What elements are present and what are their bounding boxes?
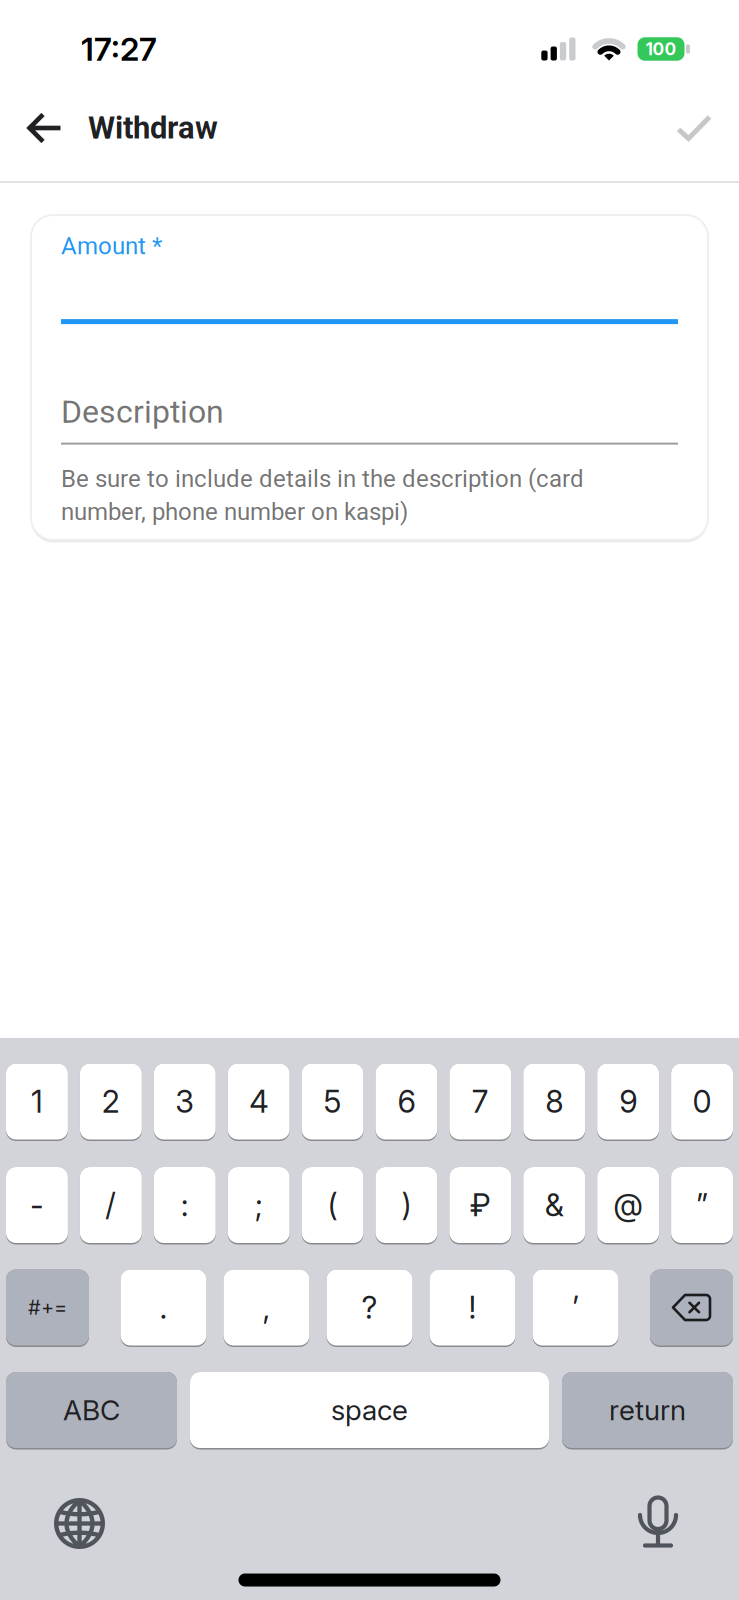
button[interactable]: 3: [154, 1063, 216, 1141]
staticText: return: [609, 1393, 686, 1426]
button[interactable]: Next keyboard: [53, 1497, 105, 1549]
button[interactable]: Amount *: [61, 232, 678, 324]
button[interactable]: :: [154, 1167, 216, 1244]
button[interactable]: 0: [671, 1063, 733, 1141]
staticText: 4: [249, 1083, 268, 1120]
button[interactable]: #+=: [6, 1269, 89, 1347]
button[interactable]: 6: [375, 1063, 437, 1141]
button[interactable]: &: [523, 1167, 585, 1244]
button[interactable]: return: [562, 1372, 733, 1449]
staticText: &: [545, 1187, 564, 1223]
staticText: @: [613, 1187, 643, 1223]
staticText: ): [401, 1187, 411, 1223]
button[interactable]: @: [597, 1167, 659, 1244]
button[interactable]: Description: [61, 393, 678, 526]
button[interactable]: Delete: [650, 1269, 733, 1347]
button[interactable]: ;: [228, 1167, 290, 1244]
button[interactable]: ): [375, 1167, 437, 1244]
staticText: ,: [262, 1289, 270, 1326]
staticText: 17:27: [81, 30, 157, 68]
button[interactable]: ’: [532, 1269, 618, 1347]
staticText: 3: [175, 1083, 194, 1120]
staticText: 5: [324, 1083, 342, 1120]
button[interactable]: -: [6, 1167, 68, 1244]
staticText: 1: [31, 1083, 43, 1120]
button[interactable]: (: [302, 1167, 363, 1244]
staticText: ’: [572, 1289, 579, 1326]
staticText: space: [331, 1393, 408, 1426]
staticText: 8: [545, 1083, 563, 1120]
staticText: Description: [61, 393, 224, 431]
staticText: ₽: [470, 1187, 491, 1223]
button[interactable]: ₽: [449, 1167, 511, 1244]
staticText: 2: [102, 1083, 120, 1120]
staticText: /: [105, 1187, 116, 1223]
staticText: 100: [645, 39, 676, 59]
button[interactable]: ,: [223, 1269, 309, 1347]
button[interactable]: 5: [302, 1063, 363, 1141]
button[interactable]: ?: [326, 1269, 412, 1347]
staticText: 0: [692, 1083, 711, 1120]
staticText: ABC: [63, 1393, 120, 1426]
staticText: 6: [397, 1083, 415, 1120]
staticText: ”: [696, 1187, 708, 1223]
staticText: .: [159, 1289, 167, 1326]
button[interactable]: ”: [671, 1167, 733, 1244]
button[interactable]: Back: [28, 113, 62, 143]
staticText: -: [30, 1187, 44, 1223]
staticText: (: [328, 1187, 338, 1223]
button[interactable]: 7: [449, 1063, 511, 1141]
staticText: 7: [472, 1083, 489, 1120]
staticText: !: [468, 1289, 476, 1326]
button[interactable]: 9: [597, 1063, 659, 1141]
button[interactable]: space: [190, 1372, 549, 1449]
button[interactable]: 4: [228, 1063, 290, 1141]
staticText: ?: [361, 1289, 377, 1326]
staticText: #+=: [28, 1296, 67, 1319]
staticText: 9: [619, 1083, 637, 1120]
button[interactable]: 8: [523, 1063, 585, 1141]
staticText: number, phone number on kaspi): [61, 498, 408, 526]
staticText: :: [181, 1187, 189, 1223]
button[interactable]: .: [120, 1269, 206, 1347]
staticText: Amount *: [61, 232, 162, 260]
button[interactable]: /: [80, 1167, 142, 1244]
staticText: ;: [255, 1187, 263, 1223]
button[interactable]: Dictate: [640, 1495, 676, 1549]
button[interactable]: 2: [80, 1063, 142, 1141]
button[interactable]: 1: [6, 1063, 68, 1141]
staticText: Be sure to include details in the descri…: [61, 465, 584, 493]
button[interactable]: ABC: [6, 1372, 177, 1449]
button[interactable]: !: [429, 1269, 515, 1347]
button[interactable]: Confirm: [677, 114, 711, 141]
staticText: Withdraw: [88, 110, 218, 146]
